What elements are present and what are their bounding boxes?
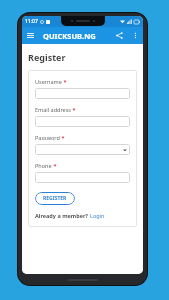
button[interactable]: Login: [90, 212, 105, 219]
button[interactable]: Open navigation menu: [22, 27, 39, 44]
staticText: Email address: [35, 106, 71, 113]
staticText: *: [71, 106, 76, 113]
button[interactable]: [35, 88, 130, 99]
staticText: Phone: [35, 162, 52, 169]
staticText: 11:07: [25, 18, 38, 25]
staticText: Already a member?: [35, 212, 90, 219]
button[interactable]: [35, 172, 130, 183]
staticText: *: [62, 78, 67, 85]
staticText: Username: [35, 78, 62, 85]
staticText: Password: [35, 134, 60, 141]
staticText: *: [52, 162, 57, 169]
button[interactable]: [35, 116, 130, 127]
staticText: Login: [90, 212, 105, 219]
button[interactable]: More options: [128, 28, 143, 43]
staticText: QUICKSUB.NG: [43, 31, 111, 41]
button[interactable]: Share: [111, 27, 128, 44]
button[interactable]: [35, 144, 130, 155]
staticText: Register: [28, 51, 66, 63]
staticText: REGISTER: [43, 195, 67, 202]
button[interactable]: REGISTER: [35, 192, 75, 205]
staticText: *: [60, 134, 65, 141]
